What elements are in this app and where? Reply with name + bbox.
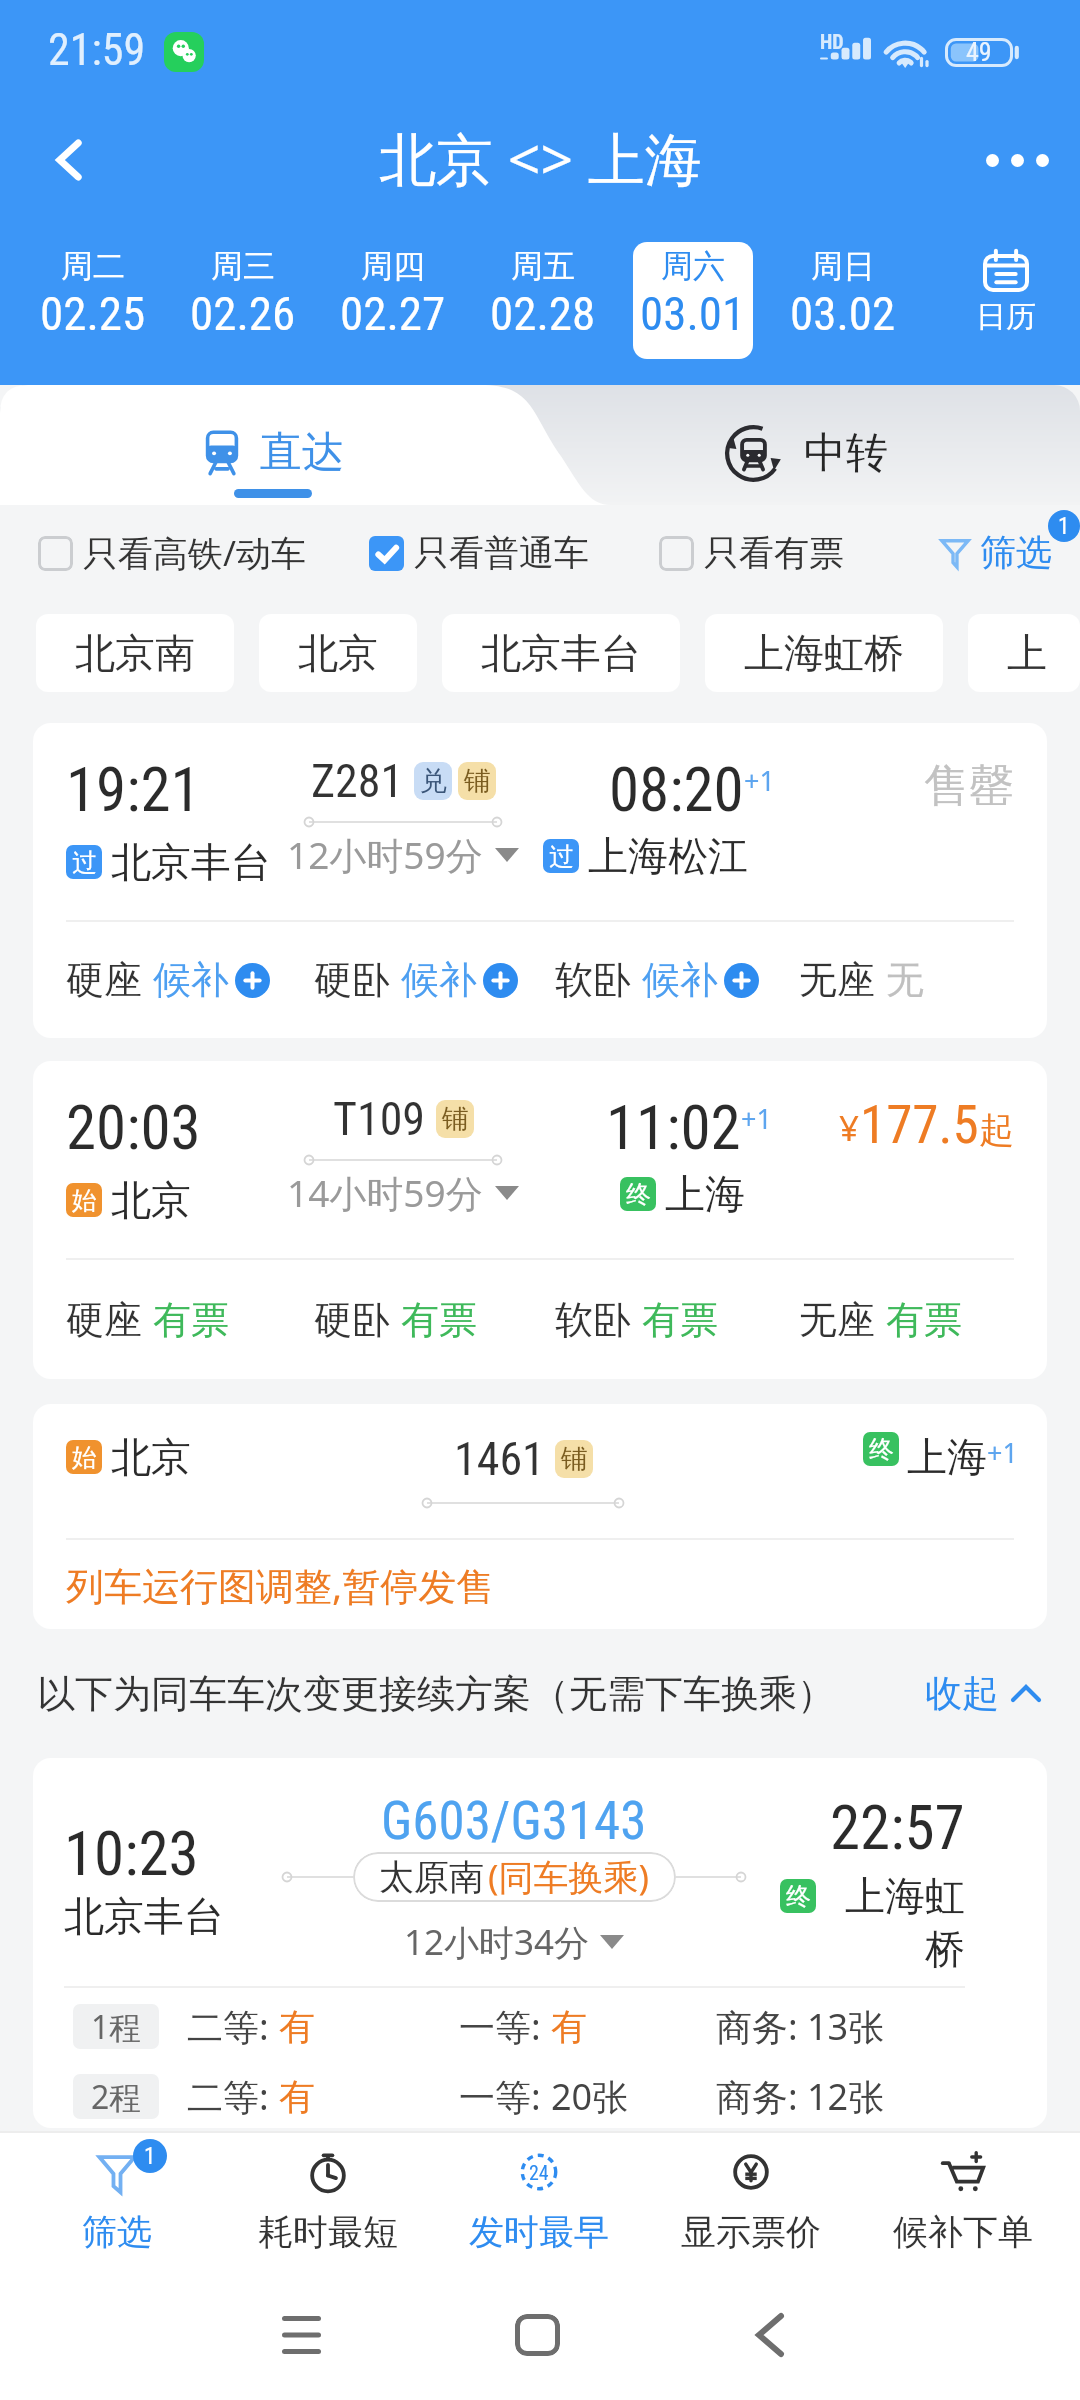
staticText: 以下为同车车次变更接续方案（无需下车换乘） [37,1670,835,1718]
staticText: 始 [72,1185,97,1216]
button[interactable]: Back [28,119,110,201]
button[interactable]: 24 [433,2133,645,2270]
staticText: 筛选 [980,530,1052,575]
staticText: 列车运行图调整,暂停发售 [66,1559,495,1611]
staticText: 始 [72,1442,97,1473]
staticText: 14小时59分 [287,1167,483,1218]
button[interactable]: 只看有票 [659,531,844,575]
staticText: 二等: [187,2072,279,2121]
staticText: HD [820,30,844,53]
button[interactable]: 上海虹桥 [705,614,943,692]
button[interactable]: 周三 [183,242,303,359]
button[interactable]: 周五 [483,242,603,359]
button[interactable]: 中转 [540,385,1080,505]
staticText: 177.5 [860,1094,979,1156]
button[interactable]: Home [457,2270,617,2400]
staticText: 1461 [454,1432,545,1486]
staticText: 硬卧 [314,956,390,1004]
button[interactable]: 收起 [925,1670,1041,1717]
staticText: (同车换乘) [488,1853,650,1901]
staticText: +1 [744,762,775,799]
staticText: 一等: [459,2072,551,2121]
button[interactable]: Calendar [918,216,1080,385]
button[interactable]: 周六 [633,242,753,359]
staticText: 有 [279,2074,315,2119]
staticText: 10:23 [64,1818,199,1889]
staticText: 终 [869,1434,894,1465]
button[interactable]: 19:21 [33,723,1047,1038]
staticText: 12小时59分 [287,829,483,880]
staticText: 北京丰台 [64,1891,224,1941]
staticText: 发时最早 [469,2210,609,2254]
button[interactable]: 周日 [783,242,903,359]
button[interactable]: 10:23 [33,1758,1047,2128]
button[interactable]: 20:03 [33,1061,1047,1379]
staticText: 21:59 [48,24,146,76]
staticText: 起 [979,1108,1014,1152]
staticText: 上海虹桥 [744,628,904,678]
staticText: 08:20 [609,754,744,825]
staticText: 上海松江 [588,831,748,881]
staticText: 显示票价 [681,2210,821,2254]
staticText: 12小时34分 [404,1918,590,1966]
button[interactable]: 显示票价 [645,2133,857,2270]
button[interactable]: 只看高铁/动车 [38,529,307,577]
staticText: 22:57 [830,1792,965,1863]
button[interactable]: 北京南 [36,614,234,692]
staticText: 筛选 [82,2210,152,2254]
staticText: 硬座 [66,1296,142,1344]
button[interactable]: 周四 [333,242,453,359]
staticText: +1 [741,1100,772,1137]
staticText: 耗时最短 [258,2210,398,2254]
staticText: 上海 [665,1169,745,1219]
staticText: 一等: [459,2002,551,2051]
button[interactable]: Back [690,2270,850,2400]
staticText: 19:21 [66,754,201,825]
staticText: 候补下单 [893,2210,1033,2254]
staticText: T109 [333,1092,426,1146]
staticText: 03.01 [640,286,746,341]
staticText: 日历 [976,298,1036,336]
button[interactable]: 候补下单 [857,2133,1069,2270]
staticText: 中转 [804,427,888,480]
button[interactable]: 始 [33,1404,1047,1629]
staticText: 02.28 [490,286,596,341]
button[interactable]: Recent apps [221,2270,381,2400]
staticText: 02.25 [40,286,146,341]
button[interactable]: 直达 [0,385,540,505]
staticText: 北京 [298,628,378,678]
staticText: 无 [886,956,924,1004]
staticText: 北京丰台 [481,628,641,678]
staticText: ¥ [839,1104,860,1152]
staticText: 硬卧 [314,1296,390,1344]
staticText: 周三 [211,246,275,286]
staticText: Z281 [311,754,404,808]
staticText: 上 [1007,628,1041,678]
staticText: 太原南 [379,1855,484,1899]
staticText: 有票 [401,1296,477,1344]
staticText: 无座 [799,1296,875,1344]
button[interactable]: More options [976,119,1058,201]
staticText: 铺 [442,1102,469,1136]
staticText: 02.26 [190,286,296,341]
button[interactable]: 只看普通车 [369,531,589,575]
button[interactable]: 耗时最短 [222,2133,433,2270]
staticText: 北京 [111,1175,191,1225]
button[interactable]: 上 [968,614,1080,692]
staticText: 北京 <> 上海 [379,119,702,197]
staticText: 2程 [91,2075,142,2119]
button[interactable]: 北京丰台 [442,614,680,692]
staticText: 终 [786,1881,811,1912]
staticText: 20张 [551,2072,629,2121]
staticText: 11:02 [606,1092,741,1163]
button[interactable]: 筛选 [941,530,1052,575]
button[interactable]: 北京 [259,614,417,692]
staticText: 02.27 [340,286,446,341]
staticText: 有 [279,2004,315,2049]
button[interactable]: 筛选 [11,2133,222,2270]
button[interactable]: 周二 [33,242,153,359]
staticText: 软卧 [555,956,631,1004]
staticText: 直达 [260,426,344,479]
staticText: 49 [966,37,992,67]
staticText: 北京南 [75,628,195,678]
